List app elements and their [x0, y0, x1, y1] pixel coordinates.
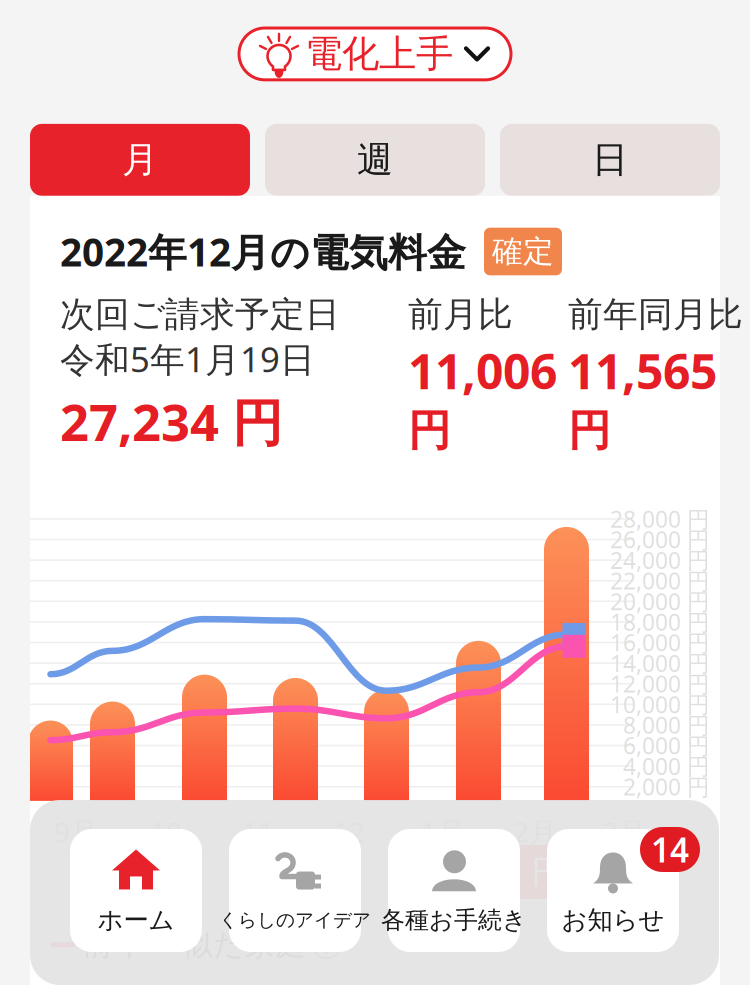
staticText: 8,000 円	[623, 710, 710, 740]
staticText: 11,565	[568, 339, 717, 402]
button[interactable]: 週	[265, 124, 485, 196]
staticText: 16,000 円	[610, 627, 710, 658]
staticText: お知らせ	[561, 904, 664, 935]
staticText: 28,000 円	[610, 504, 710, 534]
staticText: 円	[408, 404, 451, 457]
button[interactable]: お知らせ	[547, 829, 679, 952]
button[interactable]: 日	[500, 124, 720, 196]
button[interactable]: kWh	[598, 845, 699, 899]
button[interactable]: くらしのアイデア	[229, 829, 361, 952]
staticText: 4,000 円	[623, 751, 710, 781]
staticText: 電化上手	[305, 31, 453, 77]
staticText: 2022年12月の電気料金	[60, 226, 466, 277]
staticText: 24,000 円	[610, 545, 710, 575]
staticText: kWh	[615, 851, 682, 893]
staticText: 22,000 円	[610, 566, 710, 596]
staticText: 週	[357, 138, 393, 182]
staticText: ホーム	[97, 904, 174, 935]
staticText: 14	[651, 827, 689, 872]
staticText: 似た家庭	[182, 926, 306, 964]
staticText: 9月	[54, 813, 98, 850]
staticText: 6,000 円	[623, 730, 710, 761]
staticText: 前年	[82, 926, 144, 964]
staticText: 27,234 円	[60, 388, 283, 455]
staticText: 令和5年1月19日	[60, 336, 315, 382]
staticText: 10,000 円	[610, 689, 710, 719]
button[interactable]: ヘルプ	[313, 931, 340, 958]
staticText: 20,000 円	[610, 586, 710, 616]
staticText: ?	[321, 929, 331, 961]
staticText: 確定	[492, 233, 554, 270]
staticText: 1月	[421, 813, 465, 850]
staticText: 各種お手続き	[381, 905, 527, 935]
button[interactable]: ホーム	[70, 829, 202, 952]
staticText: 14,000 円	[610, 648, 710, 678]
staticText: 円	[531, 852, 563, 892]
button[interactable]: 各種お手続き	[388, 829, 520, 952]
staticText: 2,000 円	[623, 772, 710, 802]
staticText: 円	[568, 404, 611, 457]
staticText: 前月比	[408, 293, 513, 336]
staticText: 3月	[602, 813, 646, 850]
button[interactable]: 月	[30, 124, 250, 196]
staticText: 前年同月比	[568, 293, 743, 336]
staticText: 26,000 円	[610, 524, 710, 555]
staticText: 18,000 円	[610, 607, 710, 637]
button[interactable]: 電化上手	[239, 28, 511, 80]
staticText: 10月	[150, 813, 182, 884]
staticText: 次回ご請求予定日	[60, 293, 340, 336]
staticText: 日	[592, 138, 628, 182]
button[interactable]: 円	[497, 845, 598, 899]
staticText: 2月	[513, 813, 557, 850]
staticText: くらしのアイデア	[219, 908, 371, 931]
staticText: 12月	[333, 813, 365, 884]
staticText: 11,006	[408, 339, 557, 402]
staticText: 12,000 円	[610, 669, 710, 699]
staticText: 11月	[242, 813, 274, 884]
staticText: 月	[122, 138, 158, 182]
